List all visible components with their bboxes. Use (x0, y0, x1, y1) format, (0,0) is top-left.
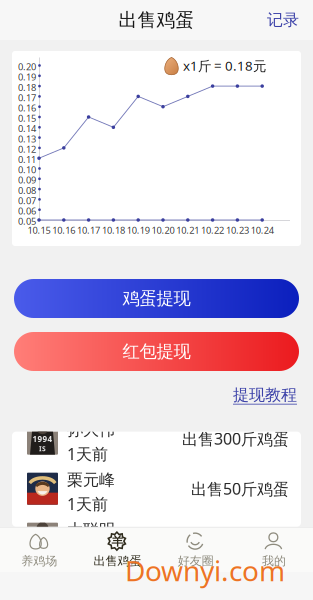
staticText: 10.20 (151, 224, 174, 236)
staticText: 1天前 (67, 443, 108, 464)
staticText: 出售80斤鸡蛋 (191, 528, 289, 549)
staticText: 10.17 (77, 224, 100, 236)
staticText: 10.16 (52, 224, 75, 236)
staticText: 出售鸡蛋 (118, 8, 194, 31)
staticText: 0.10 (18, 163, 36, 176)
staticText: 好友圈 (178, 554, 214, 568)
staticText: 10.23 (226, 224, 249, 236)
staticText: 0.18 (18, 81, 36, 93)
button[interactable]: 我的 (235, 527, 313, 571)
button[interactable]: 养鸡场 (0, 527, 78, 571)
button[interactable]: 鸡蛋提现 (14, 279, 299, 318)
staticText: 出售鸡蛋 (93, 554, 141, 568)
staticText: 出售50斤鸡蛋 (191, 478, 289, 499)
staticText: 0.17 (18, 91, 36, 104)
staticText: IS (39, 444, 46, 453)
staticText: 0.07 (18, 194, 36, 207)
staticText: 10.18 (102, 224, 125, 236)
staticText: 0.13 (18, 133, 36, 145)
staticText: 1994 (32, 434, 52, 444)
staticText: 10.19 (127, 224, 150, 236)
button[interactable]: 红包提现 (14, 332, 299, 371)
staticText: 10.21 (176, 224, 199, 236)
staticText: 10.15 (27, 224, 50, 236)
button[interactable]: 1994 (12, 414, 301, 464)
staticText: 羊 (111, 534, 123, 548)
staticText: 1天前 (67, 493, 108, 514)
button[interactable]: 记录 (267, 10, 313, 30)
staticText: 0.08 (18, 184, 36, 196)
staticText: 0.05 (18, 215, 36, 227)
staticText: IS (39, 544, 46, 553)
staticText: 10.24 (251, 224, 274, 236)
staticText: 1994 (32, 534, 52, 544)
staticText: 栗元峰 (67, 470, 115, 490)
staticText: 我的 (262, 554, 286, 568)
staticText: 0.11 (18, 153, 36, 166)
staticText: 记录 (267, 10, 299, 30)
staticText: 0.15 (18, 112, 36, 124)
button[interactable]: 好友圈 (156, 527, 235, 571)
staticText: 提现教程 (233, 385, 297, 405)
staticText: 养鸡场 (21, 554, 57, 568)
button[interactable]: 提现教程 (233, 385, 297, 405)
staticText: 0.09 (18, 174, 36, 186)
staticText: 10.22 (201, 224, 224, 236)
staticText: 0.12 (18, 143, 36, 155)
staticText: 0.20 (18, 60, 36, 73)
button[interactable]: 1994 (12, 514, 301, 564)
staticText: 出售300斤鸡蛋 (182, 428, 289, 449)
staticText: 0.19 (18, 71, 36, 83)
button[interactable]: 羊 (78, 527, 156, 571)
button[interactable]: 栗元峰 (12, 464, 301, 514)
staticText: 0.14 (18, 122, 36, 135)
staticText: Downyi.com (125, 552, 285, 589)
staticText: 鸡蛋提现 (122, 288, 190, 309)
staticText: 2天前 (67, 543, 108, 564)
staticText: 0.06 (18, 205, 36, 217)
staticText: 0.16 (18, 102, 36, 114)
staticText: 红包提现 (122, 341, 190, 362)
staticText: x1斤 = 0.18元 (183, 57, 266, 74)
staticText: 大聪明 (67, 520, 115, 540)
staticText: 孙大伟 (67, 420, 115, 440)
